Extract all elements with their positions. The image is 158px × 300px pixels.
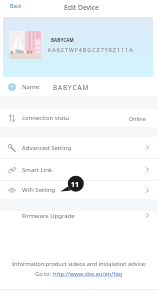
staticText: connection statu — [22, 114, 70, 122]
staticText: Advanced Setting — [22, 144, 72, 152]
button[interactable]: Smart Link — [0, 159, 158, 180]
staticText: Firmware Upgrade — [22, 212, 75, 220]
button[interactable]: Firmware Upgrade — [0, 211, 158, 220]
staticText: BABYCAM — [53, 83, 90, 92]
staticText: Back — [10, 3, 22, 10]
button[interactable]: Name: — [0, 78, 158, 96]
staticText: Name: — [22, 83, 41, 91]
staticText: Smart Link — [22, 166, 53, 174]
staticText: 11 — [71, 180, 80, 190]
staticText: KA62TWF4BGCZ7Y8Z111A — [48, 46, 134, 53]
button[interactable]: http://www.sbo.eu/en/faq — [53, 270, 123, 278]
staticText: Online — [129, 115, 146, 122]
staticText: WiFi Setting — [22, 186, 56, 194]
staticText: BABYCAM — [51, 37, 74, 43]
button[interactable]: WiFi Setting — [0, 181, 158, 199]
other: Step 11 hint — [60, 176, 84, 196]
staticText: Information:product videos and instalati… — [12, 260, 147, 268]
button[interactable]: Advanced Setting — [0, 137, 158, 158]
button[interactable]: Back — [8, 1, 24, 12]
staticText: Go to: — [35, 270, 53, 278]
staticText: Edit Device — [64, 3, 99, 12]
button[interactable]: connection statu — [0, 109, 158, 127]
button[interactable]: BABYCAM — [3, 17, 153, 77]
